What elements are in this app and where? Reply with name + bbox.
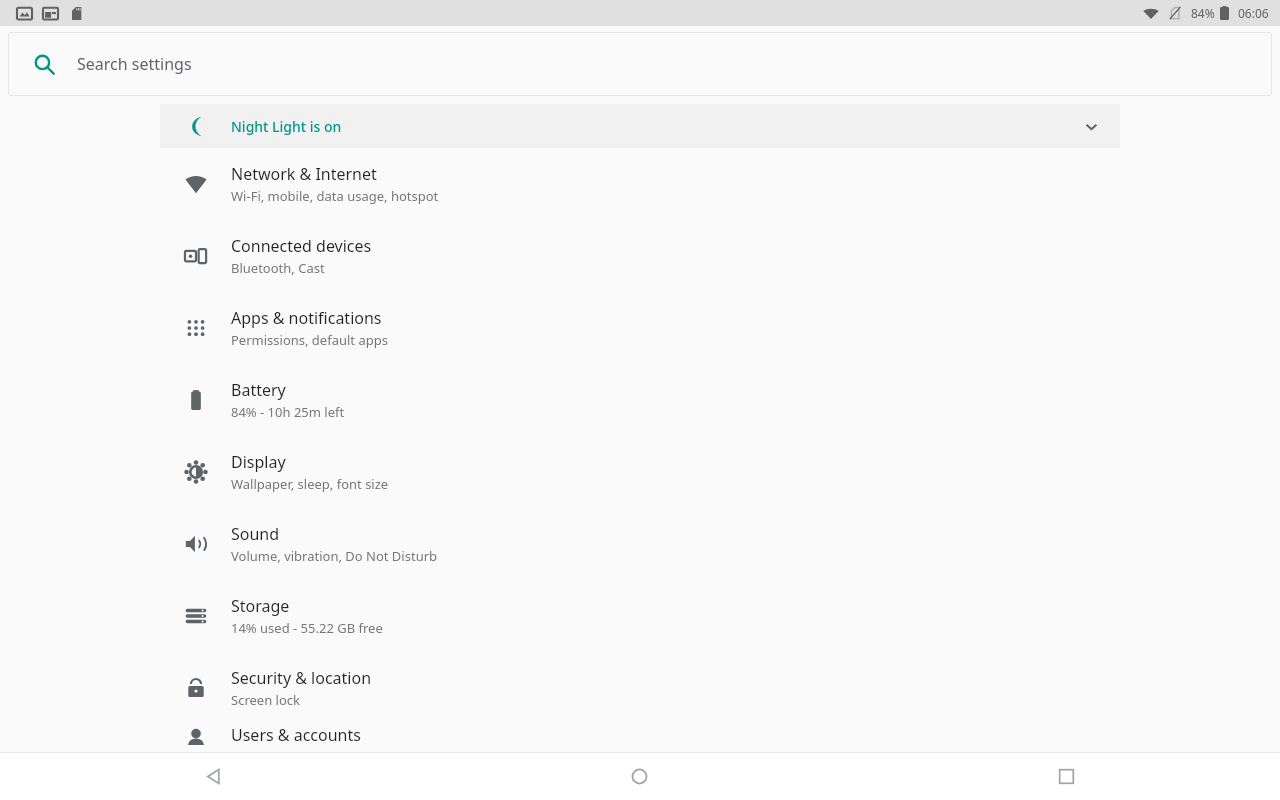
button[interactable]: Sound [0,508,1280,580]
button[interactable]: Connected devices [0,220,1280,292]
staticText: Sound [231,523,280,545]
staticText: Security & location [231,667,372,689]
button[interactable]: Battery [0,364,1280,436]
staticText: Display [231,451,286,473]
staticText: 06:06 [1238,5,1269,21]
button[interactable]: Search [8,32,1272,96]
button[interactable]: Home [426,752,853,800]
staticText: Battery [231,379,286,401]
button[interactable]: Storage [0,580,1280,652]
button[interactable]: Apps & notifications [0,292,1280,364]
other: Search [33,53,56,76]
staticText: Wi-Fi, mobile, data usage, hotspot [231,187,439,205]
staticText: Permissions, default apps [231,331,388,349]
button[interactable]: Expand suggestion [1062,104,1120,148]
staticText: Search settings [77,53,192,75]
button[interactable]: Network & Internet [0,148,1280,220]
button[interactable]: Display [0,436,1280,508]
staticText: Connected devices [231,235,372,257]
button[interactable]: Back [0,752,426,800]
staticText: 84% - 10h 25m left [231,403,345,421]
staticText: Users & accounts [231,724,361,746]
staticText: Volume, vibration, Do Not Disturb [231,547,438,565]
staticText: Storage [231,595,290,617]
staticText: Night Light is on [231,117,342,136]
button[interactable]: Night Light is on [160,104,1120,148]
staticText: Apps & notifications [231,307,382,329]
button[interactable]: Users & accounts [0,724,1280,752]
staticText: Network & Internet [231,163,377,185]
staticText: 14% used - 55.22 GB free [231,619,383,637]
staticText: Bluetooth, Cast [231,259,325,277]
staticText: 84% [1191,5,1215,21]
button[interactable]: Recent apps [853,752,1280,800]
staticText: Wallpaper, sleep, font size [231,475,389,493]
staticText: Screen lock [231,691,300,709]
button[interactable]: Security & location [0,652,1280,724]
